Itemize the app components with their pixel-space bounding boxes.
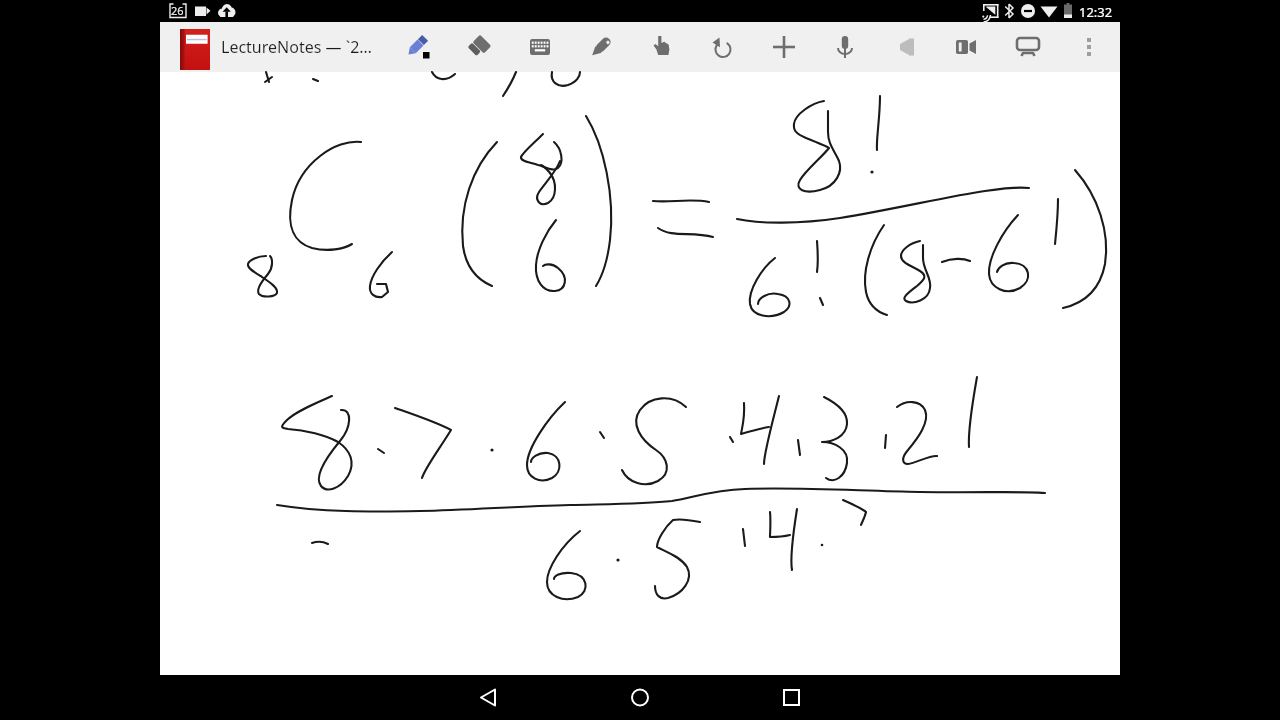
button[interactable]: Record video xyxy=(945,25,989,69)
button[interactable]: Select xyxy=(640,25,684,69)
button[interactable]: Pen xyxy=(396,25,440,69)
button[interactable]: Presentation mode xyxy=(1006,25,1050,69)
button[interactable]: More options xyxy=(1067,25,1111,69)
button[interactable]: Keyboard xyxy=(518,25,562,69)
button[interactable]: Undo xyxy=(701,25,745,69)
staticText: 12:32 xyxy=(1079,3,1113,21)
button[interactable]: Record audio xyxy=(823,25,867,69)
button[interactable]: Highlighter xyxy=(579,25,623,69)
button[interactable]: Eraser xyxy=(457,25,501,69)
button[interactable]: Add page xyxy=(762,25,806,69)
button[interactable]: Home xyxy=(610,675,670,720)
button[interactable]: LectureNotes — `2… xyxy=(221,36,372,58)
button[interactable]: Recents xyxy=(762,675,822,720)
button[interactable]: Mute xyxy=(884,25,928,69)
button[interactable]: App icon xyxy=(180,29,210,70)
button[interactable]: Back xyxy=(460,675,520,720)
button[interactable]: Note drawing area xyxy=(160,72,1120,675)
staticText: 26 xyxy=(171,3,184,18)
